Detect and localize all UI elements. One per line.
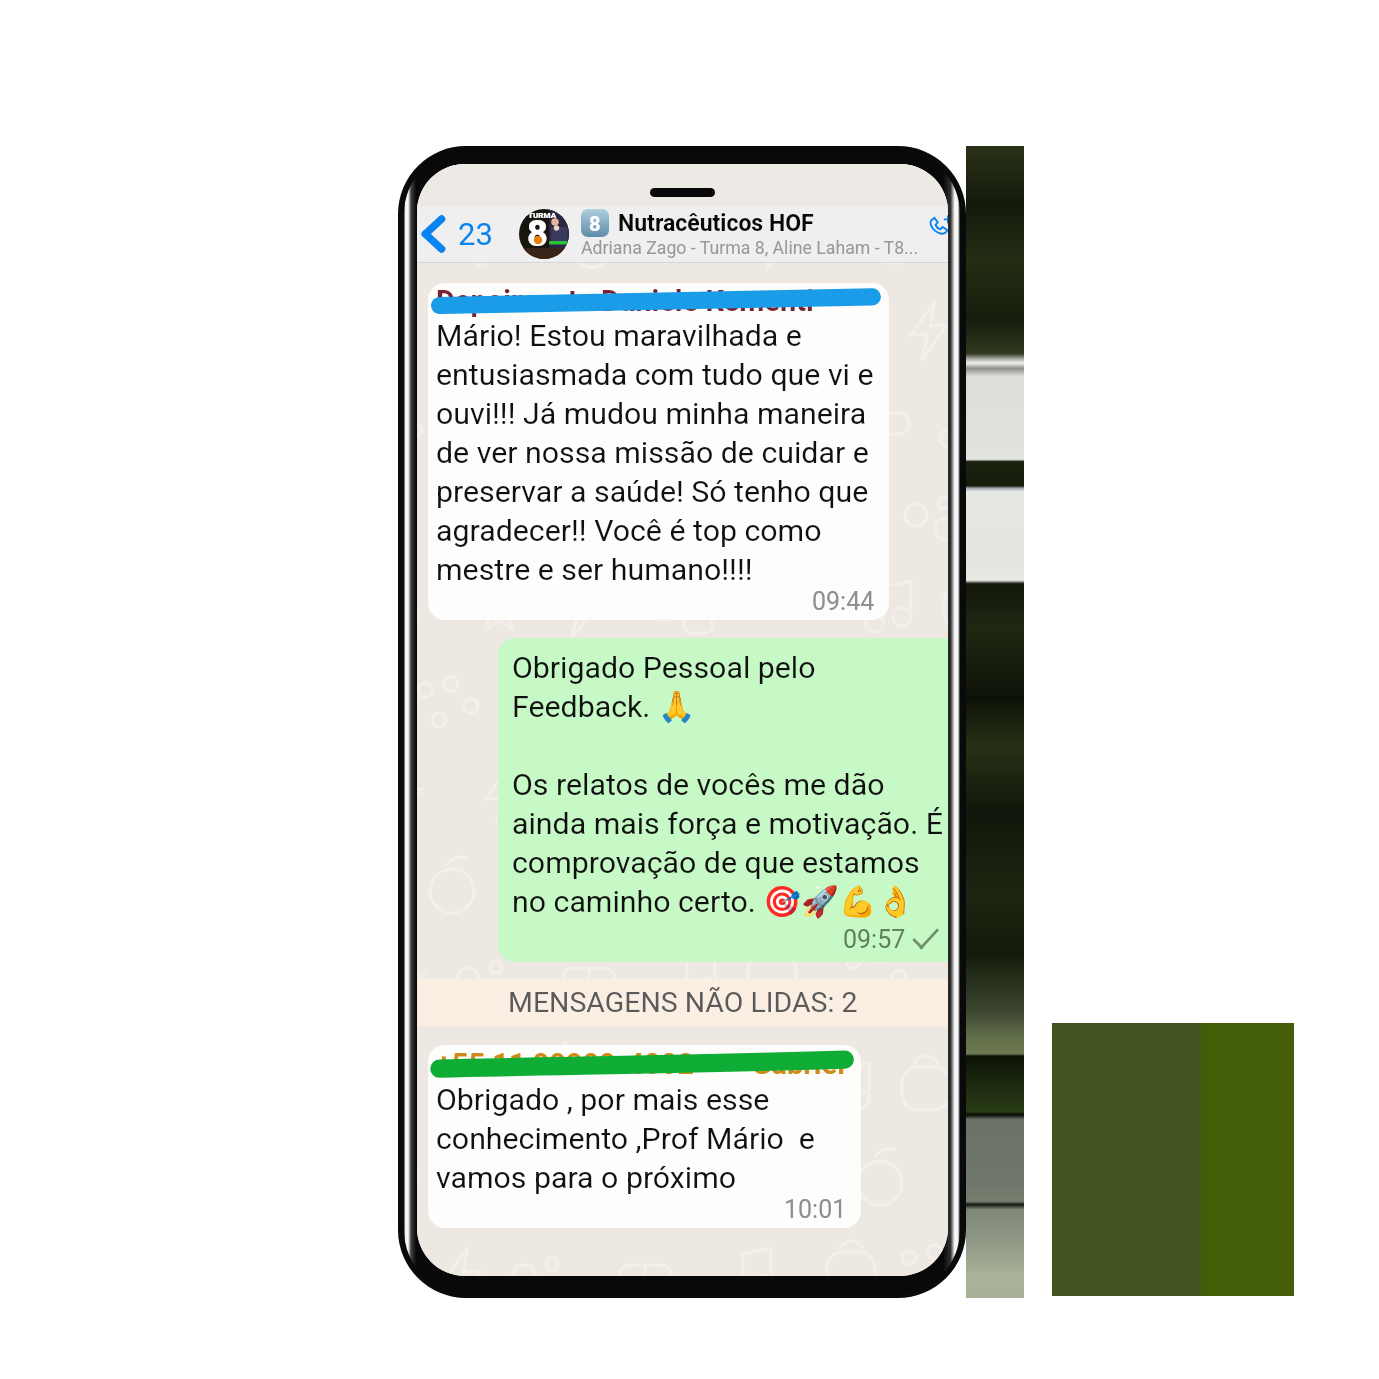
staticText: TURMA [528, 211, 557, 220]
staticText: Nutracêuticos HOF [618, 210, 814, 237]
button[interactable]: Video call [926, 206, 948, 262]
staticText: Adriana Zago - Turma 8, Aline Laham - T8… [581, 238, 919, 259]
staticText: +55 11 99999-4002 Gabriel [436, 1047, 845, 1081]
staticText: 09:57 [843, 925, 906, 954]
staticText: Obrigado , por mais esse conhecimento ,P… [436, 1082, 851, 1195]
staticText: Depoimento Daniele Kementi [436, 284, 814, 317]
button[interactable]: 23 [417, 206, 497, 262]
staticText: Obrigado Pessoal pelo Feedback. 🙏 Os rel… [512, 650, 948, 919]
staticText: 8 [589, 212, 601, 235]
staticText: MENSAGENS NÃO LIDAS: 2 [508, 986, 858, 1019]
staticText: 23 [458, 216, 493, 252]
staticText: 8 [527, 213, 548, 255]
staticText: 09:44 [812, 587, 875, 616]
staticText: Mário! Estou maravilhada e entusiasmada … [436, 318, 879, 587]
staticText: 10:01 [784, 1195, 847, 1224]
